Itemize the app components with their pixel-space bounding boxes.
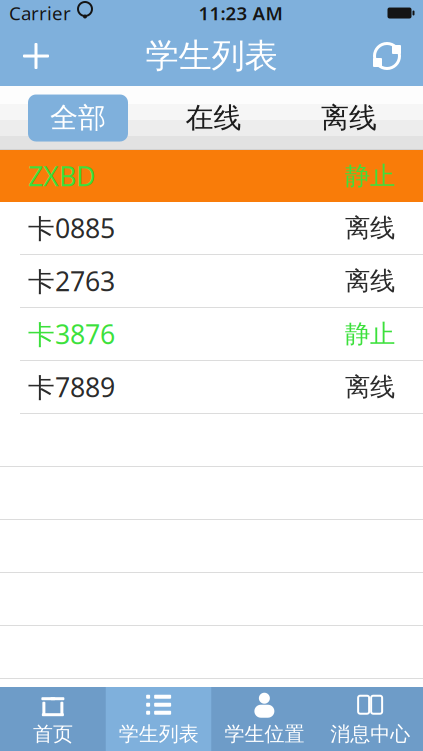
staticText: 离线 [345,265,395,296]
button[interactable]: 消息中心 [317,687,423,751]
staticText: 在线 [185,101,241,135]
button[interactable]: Add student [0,26,72,86]
staticText: 全部 [50,101,106,135]
button[interactable]: ZXBD [0,150,423,202]
staticText: 离线 [345,212,395,243]
staticText: 离线 [345,371,395,402]
staticText: 消息中心 [330,722,410,746]
staticText: 首页 [33,722,73,746]
button[interactable]: 全部 [28,94,128,141]
staticText: 卡2763 [28,263,115,299]
staticText: Carrier [9,1,71,25]
staticText: ZXBD [28,158,95,194]
button[interactable]: 学生列表 [106,687,212,751]
button[interactable]: 卡0885 [0,202,423,254]
staticText: 学生列表 [145,35,277,76]
staticText: 学生位置 [224,722,304,746]
button[interactable]: 在线 [163,94,263,141]
staticText: 卡7889 [28,369,115,405]
button[interactable]: 卡3876 [0,308,423,360]
button[interactable]: 学生位置 [211,687,317,751]
staticText: 卡3876 [28,316,115,352]
staticText: 离线 [321,101,377,135]
button[interactable]: 卡2763 [0,255,423,307]
button[interactable]: 卡7889 [0,361,423,413]
staticText: 卡0885 [28,210,115,246]
staticText: 11:23 AM [198,1,282,25]
staticText: 静止 [345,160,395,191]
button[interactable]: Refresh [351,26,423,86]
staticText: 学生列表 [119,722,199,746]
button[interactable]: 首页 [0,687,106,751]
button[interactable]: 离线 [299,94,399,141]
staticText: 静止 [345,318,395,349]
